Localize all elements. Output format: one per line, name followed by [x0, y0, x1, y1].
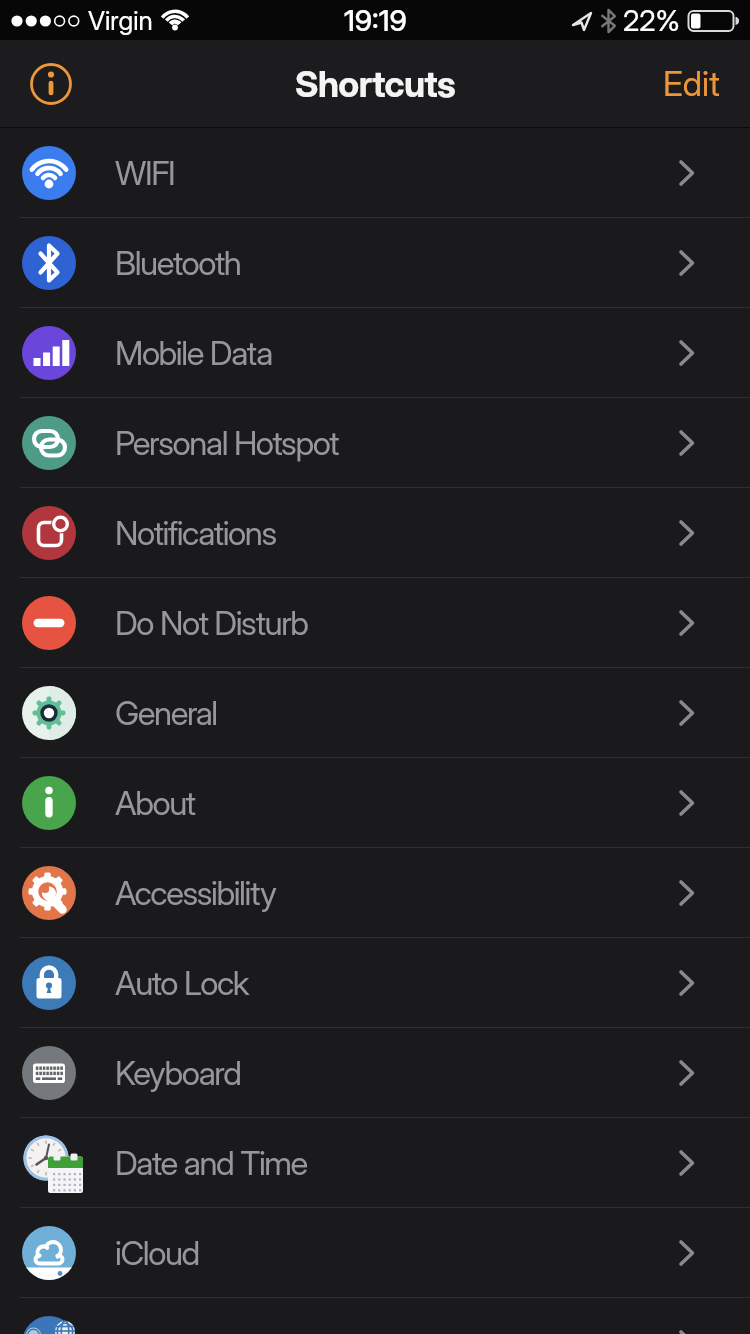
- staticText: Accessibility: [115, 873, 276, 913]
- button[interactable]: About: [0, 758, 750, 848]
- button[interactable]: Auto Lock: [0, 938, 750, 1028]
- button[interactable]: Mobile Data: [0, 308, 750, 398]
- button[interactable]: Date and Time: [0, 1118, 750, 1208]
- staticText: Auto Lock: [115, 963, 249, 1003]
- staticText: WIFI: [115, 153, 175, 193]
- button[interactable]: Edit: [663, 63, 720, 104]
- button[interactable]: Do Not Disturb: [0, 578, 750, 668]
- button[interactable]: [0, 1298, 750, 1334]
- staticText: Keyboard: [115, 1053, 241, 1093]
- button[interactable]: Accessibility: [0, 848, 750, 938]
- staticText: Shortcuts: [295, 62, 456, 106]
- staticText: Date and Time: [115, 1143, 307, 1183]
- staticText: Personal Hotspot: [115, 423, 339, 463]
- staticText: Virgin: [88, 5, 153, 36]
- staticText: Edit: [663, 63, 720, 104]
- staticText: Notifications: [115, 513, 276, 553]
- staticText: iCloud: [115, 1233, 199, 1273]
- staticText: Do Not Disturb: [115, 603, 308, 643]
- button[interactable]: Keyboard: [0, 1028, 750, 1118]
- button[interactable]: iCloud: [0, 1208, 750, 1298]
- staticText: Bluetooth: [115, 243, 241, 283]
- button[interactable]: Bluetooth: [0, 218, 750, 308]
- staticText: 19:19: [344, 3, 407, 38]
- button[interactable]: General: [0, 668, 750, 758]
- staticText: Mobile Data: [115, 333, 272, 373]
- button[interactable]: [29, 62, 73, 106]
- staticText: About: [115, 783, 195, 823]
- button[interactable]: Personal Hotspot: [0, 398, 750, 488]
- staticText: 22%: [623, 3, 681, 38]
- button[interactable]: WIFI: [0, 128, 750, 218]
- button[interactable]: Notifications: [0, 488, 750, 578]
- staticText: General: [115, 693, 217, 733]
